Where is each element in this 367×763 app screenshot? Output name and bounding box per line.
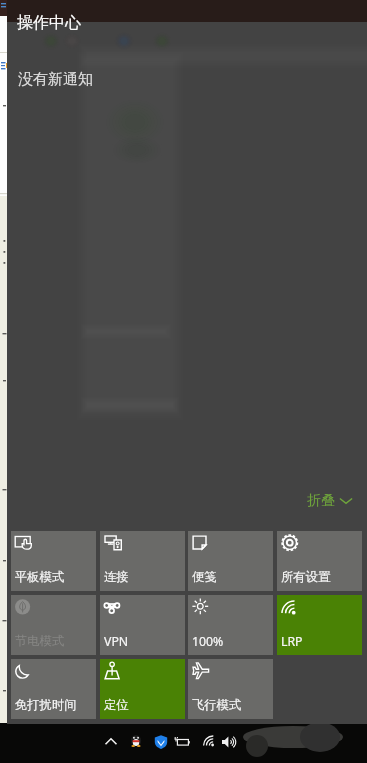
- staticText: 飞行模式: [192, 697, 242, 712]
- staticText: 操作中心: [17, 13, 81, 33]
- staticText: LRP: [281, 633, 303, 650]
- button[interactable]: 100%: [188, 595, 273, 655]
- button[interactable]: battery: [173, 732, 193, 752]
- button[interactable]: 便笺: [188, 531, 273, 591]
- button[interactable]: qq: [126, 732, 146, 752]
- button[interactable]: chevron: [101, 732, 121, 752]
- staticText: VPN: [104, 633, 129, 650]
- staticText: 便笺: [192, 569, 217, 584]
- staticText: 所有设置: [281, 569, 331, 584]
- staticText: 100%: [192, 633, 224, 650]
- button[interactable]: 所有设置: [277, 531, 362, 591]
- staticText: 免打扰时间: [15, 697, 77, 712]
- button[interactable]: wifi: [199, 732, 219, 752]
- button[interactable]: speaker: [219, 732, 239, 752]
- button[interactable]: shield: [151, 732, 171, 752]
- button[interactable]: 连接: [100, 531, 185, 591]
- staticText: 定位: [104, 697, 129, 712]
- button[interactable]: 折叠: [307, 492, 352, 510]
- staticText: 节电模式: [15, 633, 65, 648]
- button[interactable]: 节电模式: [11, 595, 96, 655]
- button[interactable]: 定位: [100, 659, 185, 719]
- button[interactable]: 平板模式: [11, 531, 96, 591]
- button[interactable]: LRP: [277, 595, 362, 655]
- button[interactable]: VPN: [100, 595, 185, 655]
- button[interactable]: 飞行模式: [188, 659, 273, 719]
- staticText: 平板模式: [15, 569, 65, 584]
- staticText: 折叠: [307, 492, 335, 510]
- staticText: 没有新通知: [18, 70, 93, 89]
- button[interactable]: 免打扰时间: [11, 659, 96, 719]
- staticText: 连接: [104, 569, 129, 584]
